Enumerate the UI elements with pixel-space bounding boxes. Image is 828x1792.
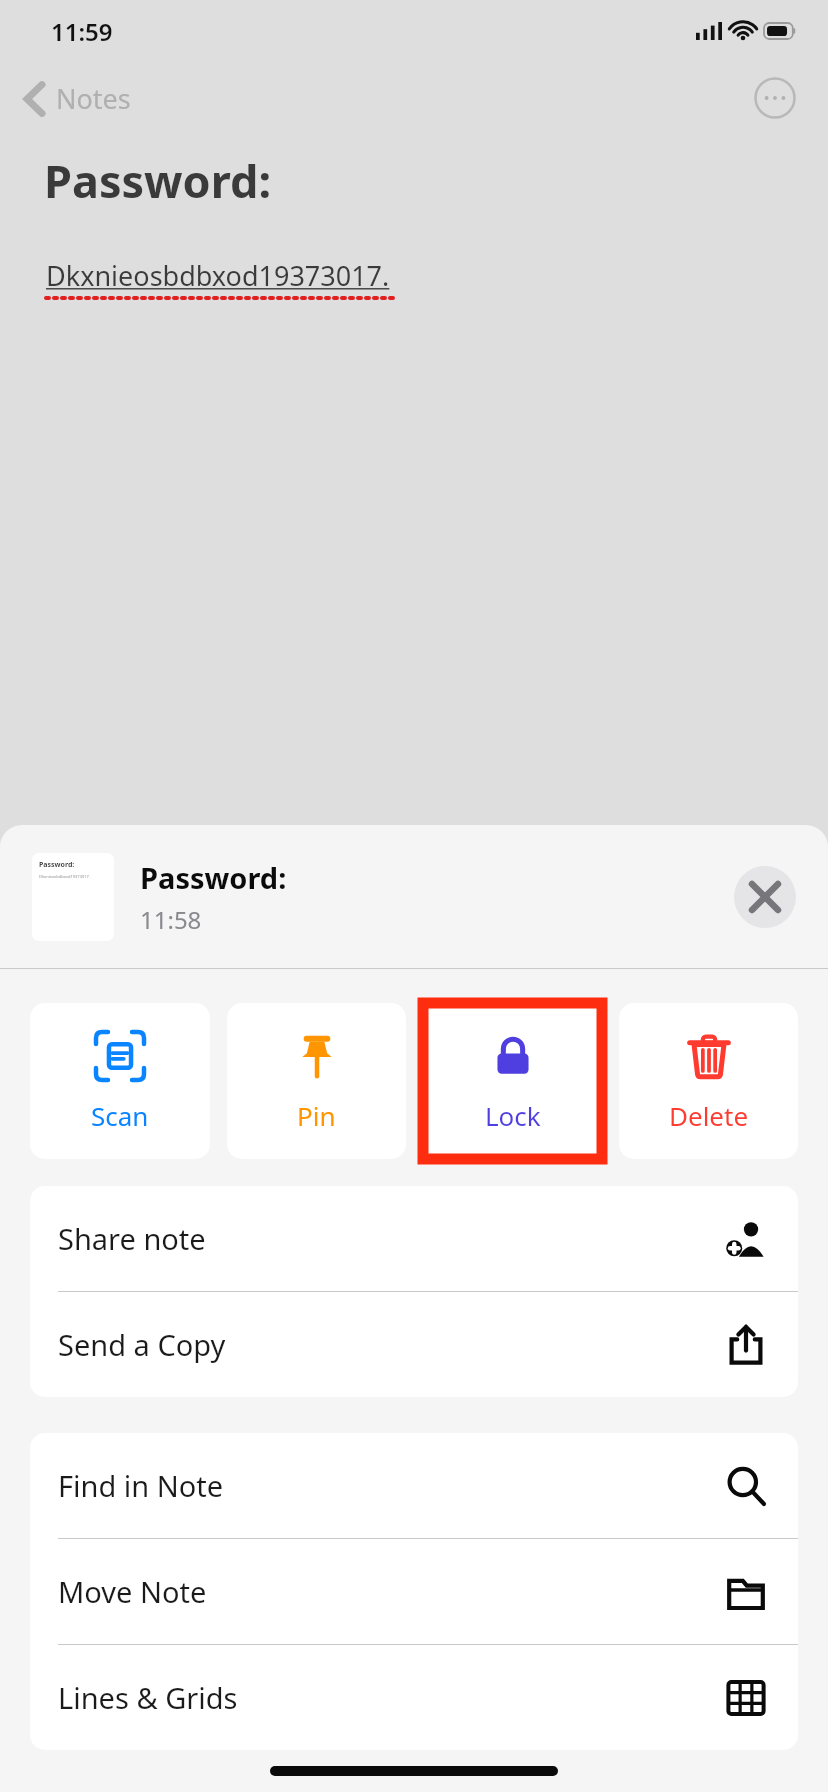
button[interactable]: More options	[754, 77, 796, 119]
button[interactable]: Send a Copy	[30, 1292, 798, 1397]
staticText: Lines & Grids	[58, 1678, 724, 1717]
button[interactable]: Move Note	[30, 1539, 798, 1644]
staticText: Password:	[44, 150, 272, 211]
staticText: Move Note	[58, 1572, 724, 1611]
button[interactable]: Close	[734, 866, 796, 928]
staticText: Delete	[669, 1098, 749, 1133]
staticText: Password:	[140, 858, 287, 897]
button[interactable]: Notes	[18, 74, 137, 123]
staticText: Pin	[297, 1098, 336, 1133]
button[interactable]: Pin	[227, 1003, 406, 1159]
staticText: Password:	[39, 860, 75, 870]
staticText: Dkxnieosbdbxod19373017.	[39, 874, 90, 879]
staticText: Scan	[91, 1098, 149, 1133]
button[interactable]: Scan	[30, 1003, 210, 1159]
button[interactable]: Share note	[30, 1186, 798, 1291]
staticText: Notes	[56, 80, 131, 117]
staticText: Find in Note	[58, 1466, 724, 1505]
button[interactable]: Lock	[423, 1003, 602, 1159]
staticText: 11:58	[140, 903, 202, 936]
staticText: Share note	[58, 1219, 724, 1258]
staticText: Dkxnieosbdbxod19373017.	[46, 257, 390, 294]
staticText: 11:59	[51, 15, 113, 48]
button[interactable]: Lines & Grids	[30, 1645, 798, 1750]
button[interactable]: Password:	[32, 853, 114, 941]
button[interactable]: Find in Note	[30, 1433, 798, 1538]
button[interactable]: Delete	[619, 1003, 798, 1159]
staticText: Send a Copy	[58, 1325, 724, 1364]
staticText: Lock	[485, 1098, 541, 1133]
